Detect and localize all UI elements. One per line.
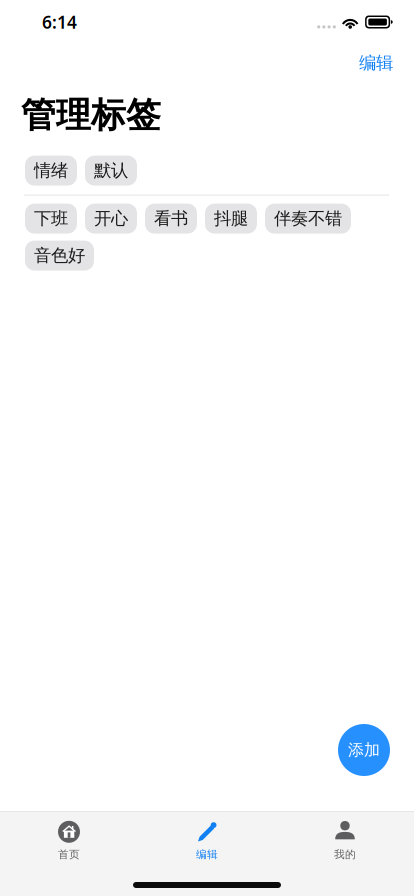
- staticText: 添加: [348, 740, 380, 760]
- staticText: 开心: [94, 208, 128, 229]
- staticText: 6:14: [42, 10, 77, 33]
- button[interactable]: 开心: [85, 204, 137, 234]
- staticText: 编辑: [359, 52, 393, 74]
- staticText: 下班: [34, 208, 68, 229]
- button[interactable]: 看书: [145, 204, 197, 234]
- staticText: 编辑: [196, 848, 218, 861]
- button[interactable]: 首页: [0, 812, 138, 865]
- button[interactable]: 编辑: [138, 812, 276, 865]
- button[interactable]: 添加: [338, 724, 390, 776]
- button[interactable]: 下班: [25, 204, 77, 234]
- button[interactable]: 音色好: [25, 241, 94, 271]
- button[interactable]: 抖腿: [205, 204, 257, 234]
- staticText: 音色好: [34, 245, 85, 266]
- staticText: 首页: [58, 848, 80, 861]
- button[interactable]: 编辑: [338, 44, 414, 82]
- staticText: 看书: [154, 208, 188, 229]
- button[interactable]: 伴奏不错: [265, 204, 351, 234]
- staticText: 情绪: [34, 160, 68, 181]
- staticText: 抖腿: [214, 208, 248, 229]
- button[interactable]: 我的: [276, 812, 414, 865]
- button[interactable]: 默认: [85, 156, 137, 186]
- staticText: 伴奏不错: [274, 208, 342, 229]
- staticText: 默认: [94, 160, 128, 181]
- button[interactable]: 情绪: [25, 156, 77, 186]
- staticText: 我的: [334, 848, 356, 861]
- staticText: 管理标签: [21, 94, 161, 137]
